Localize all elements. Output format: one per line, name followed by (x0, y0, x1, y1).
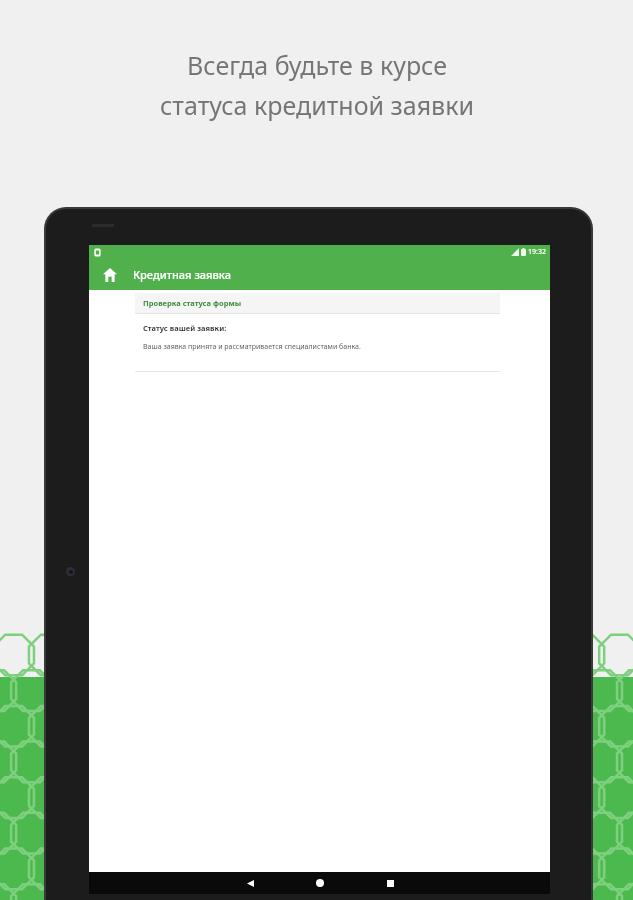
button[interactable]: Recent apps (355, 872, 425, 894)
button[interactable]: Проверка статуса формы (135, 293, 500, 372)
staticText: статуса кредитной заявки (160, 88, 474, 122)
staticText: Кредитная заявка (133, 267, 231, 282)
staticText: 19:32 (528, 247, 546, 257)
staticText: Ваша заявка принята и рассматривается сп… (143, 342, 361, 352)
button[interactable]: Back (215, 872, 285, 894)
staticText: Всегда будьте в курсе (187, 48, 447, 82)
staticText: Статус вашей заявки: (143, 323, 227, 333)
button[interactable]: Home (285, 872, 355, 894)
button[interactable]: Home (97, 262, 123, 288)
staticText: Проверка статуса формы (143, 298, 242, 308)
